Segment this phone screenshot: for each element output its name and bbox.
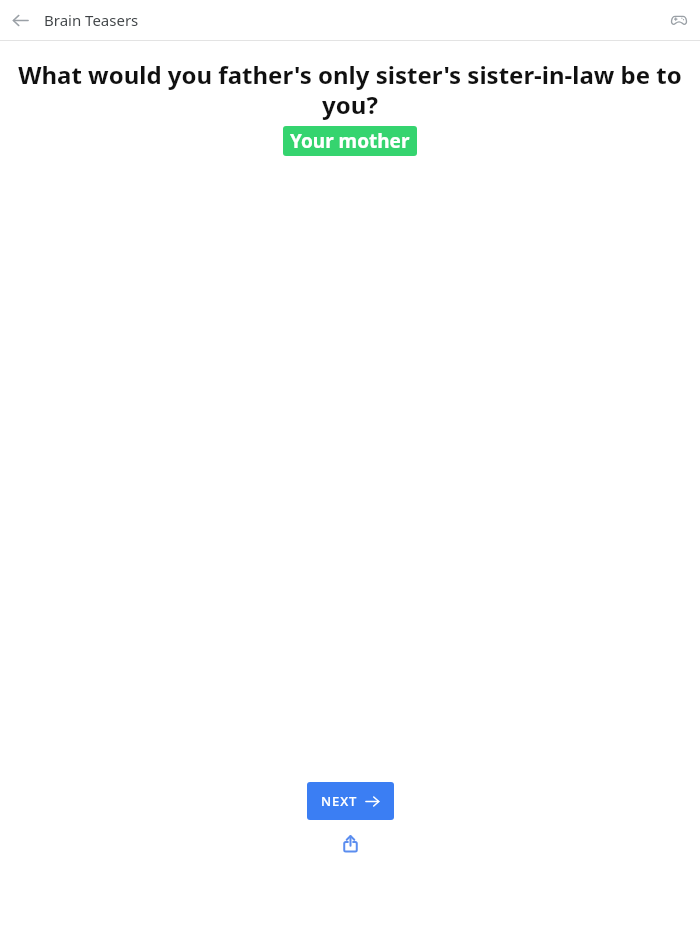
- staticText: Your mother: [290, 128, 410, 154]
- staticText: Brain Teasers: [44, 10, 139, 30]
- staticText: What would you father's only sister's si…: [14, 58, 686, 121]
- button[interactable]: Back: [6, 6, 34, 34]
- staticText: NEXT: [321, 792, 358, 810]
- button[interactable]: Share: [335, 828, 365, 858]
- button[interactable]: NEXT: [307, 782, 394, 820]
- button[interactable]: Games: [664, 5, 694, 35]
